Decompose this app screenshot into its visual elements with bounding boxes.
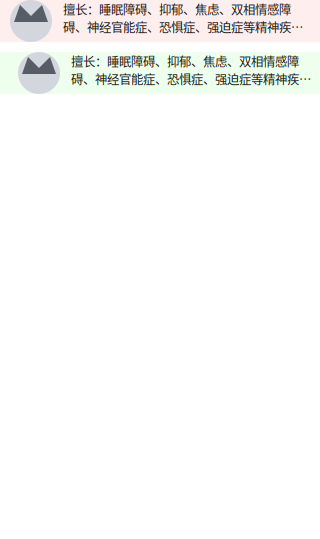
staticText: 擅长：睡眠障碍、抑郁、焦虑、双相情感障碍、神经官能症、恐惧症、强迫症等精神疾… xyxy=(63,0,303,36)
staticText: 擅长：睡眠障碍、抑郁、焦虑、双相情感障碍、神经官能症、恐惧症、强迫症等精神疾… xyxy=(71,52,311,88)
